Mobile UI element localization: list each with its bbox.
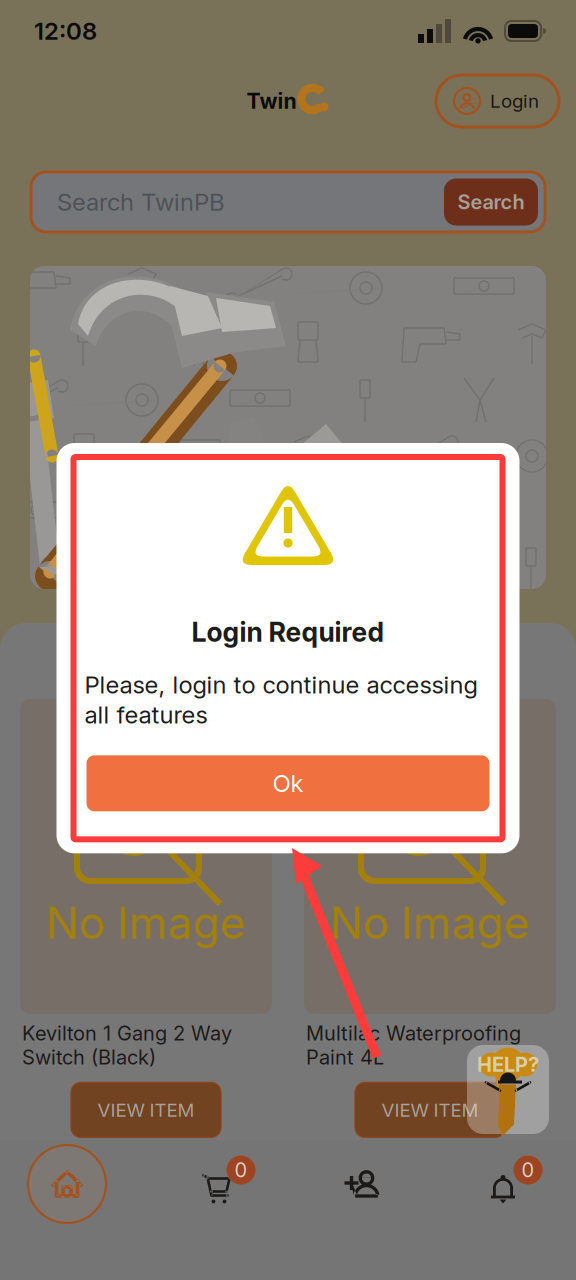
button[interactable]: Home	[12, 1129, 122, 1239]
button[interactable]: VIEW ITEM	[355, 1082, 505, 1137]
button[interactable]: Help	[467, 1045, 549, 1134]
button[interactable]: Ok	[86, 755, 489, 811]
staticText: HELP?	[477, 1052, 539, 1077]
staticText: 0	[234, 1158, 247, 1182]
button[interactable]: VIEW ITEM	[71, 1082, 221, 1137]
button[interactable]: Search	[444, 178, 538, 225]
staticText: No Image	[46, 896, 246, 949]
staticText: Paint 4L	[306, 1045, 384, 1069]
button[interactable]: Register	[313, 1129, 409, 1239]
staticText: all features	[84, 700, 207, 729]
button[interactable]: Login	[436, 75, 559, 127]
staticText: Please, login to continue accessing	[84, 670, 477, 699]
button[interactable]: Cart	[173, 1129, 269, 1239]
staticText: 0	[521, 1158, 534, 1182]
staticText: Twin	[246, 88, 296, 114]
staticText: VIEW ITEM	[97, 1099, 194, 1121]
button[interactable]: Notifications	[461, 1129, 557, 1239]
staticText: VIEW ITEM	[381, 1099, 478, 1121]
staticText: 12:08	[34, 16, 97, 45]
staticText: Multilac Waterproofing	[306, 1021, 521, 1045]
staticText: Search	[457, 190, 524, 214]
staticText: Kevilton 1 Gang 2 Way	[22, 1021, 232, 1045]
staticText: Search TwinPB	[57, 187, 225, 216]
staticText: No Image	[330, 896, 530, 949]
staticText: Ok	[272, 769, 303, 798]
staticText: Login Required	[191, 616, 384, 648]
staticText: Login	[490, 90, 539, 112]
staticText: Switch (Black)	[22, 1045, 156, 1069]
